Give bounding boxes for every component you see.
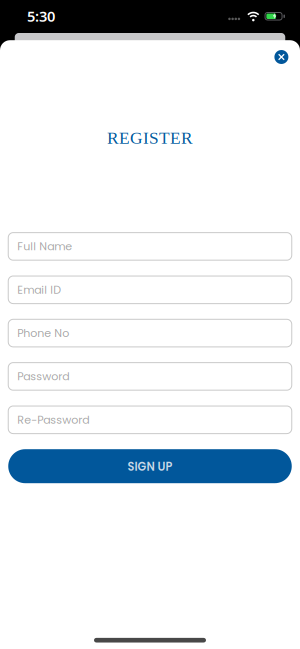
button[interactable]: Email ID [8, 276, 292, 304]
button[interactable]: Re-Password [8, 406, 292, 434]
staticText: Email ID [17, 282, 61, 298]
staticText: Full Name [17, 239, 72, 254]
button[interactable]: Full Name [8, 233, 292, 260]
staticText: SIGN UP [127, 459, 172, 475]
button[interactable]: Password [8, 363, 292, 390]
staticText: Password [17, 369, 69, 384]
staticText: Phone No [17, 325, 69, 341]
button[interactable]: Close [274, 50, 288, 64]
staticText: REGISTER [107, 128, 193, 148]
staticText: Re-Password [17, 412, 89, 428]
button[interactable]: Phone No [8, 319, 292, 347]
staticText: 5:30 [27, 6, 55, 26]
button[interactable]: SIGN UP [8, 449, 292, 483]
